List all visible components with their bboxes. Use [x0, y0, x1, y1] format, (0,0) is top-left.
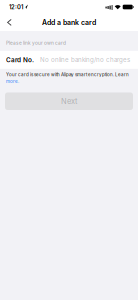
- button[interactable]: Next: [5, 92, 133, 110]
- staticText: Next: [61, 97, 77, 106]
- staticText: No online banking/no charges: [40, 56, 130, 63]
- button[interactable]: Learn more: [6, 78, 19, 84]
- staticText: Add a bank card: [42, 18, 96, 27]
- button[interactable]: Back: [0, 15, 12, 30]
- staticText: more.: [6, 78, 19, 84]
- staticText: Please link your own card: [6, 40, 66, 46]
- staticText: 12:01: [9, 3, 23, 11]
- staticText: Your card is secure with Alipay smart en…: [6, 72, 129, 77]
- staticText: Card No.: [6, 56, 34, 64]
- button[interactable]: Card No. entry field: [0, 51, 138, 69]
